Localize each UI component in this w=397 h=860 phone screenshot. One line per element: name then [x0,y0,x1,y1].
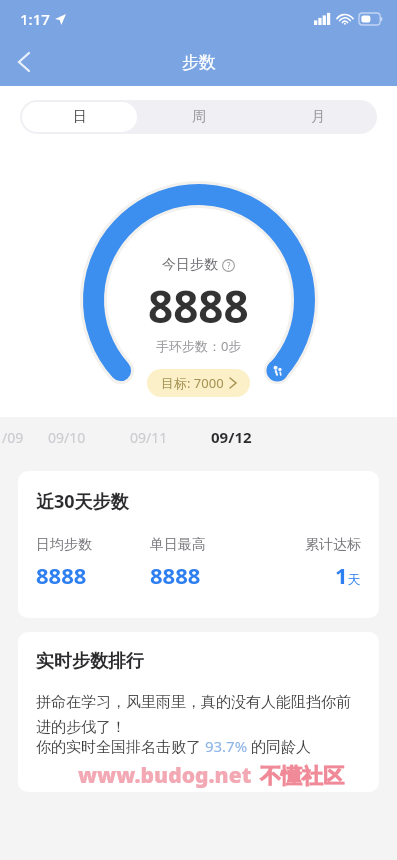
button[interactable]: 累计达标 [264,536,361,590]
staticText: 1天 [335,560,361,590]
staticText: 步数 [182,52,216,73]
button[interactable]: /09 [0,417,26,457]
staticText: ? [227,260,231,271]
button[interactable]: 目标: 7000 [147,369,250,397]
staticText: 手环步数：0步 [156,337,242,355]
button[interactable]: 月 [260,102,375,132]
staticText: 今日步数 [162,256,218,274]
staticText: 09/11 [130,428,168,447]
staticText: 实时步数排行 [36,650,144,673]
staticText: 目标: 7000 [161,374,224,392]
staticText: 拼命在学习，风里雨里，真的没有人能阻挡你前进的步伐了！ [36,693,361,736]
staticText: 单日最高 [150,536,206,554]
staticText: 8888 [148,276,249,336]
staticText: 累计达标 [305,536,361,554]
staticText: 你的实时全国排名击败了 93.7% 的同龄人 [36,736,312,756]
button[interactable]: 09/12 [190,417,272,457]
button[interactable]: Help [222,259,235,272]
staticText: 日 [73,108,87,126]
button[interactable]: 日均步数 [36,536,150,590]
staticText: www.budog.net [78,761,252,790]
staticText: 09/12 [211,427,252,447]
button[interactable]: 日 [22,102,137,132]
staticText: 1:17 [20,9,50,29]
staticText: 不懂社区 [260,763,344,789]
staticText: /09 [2,428,24,447]
staticText: 8888 [150,560,201,590]
button[interactable]: 单日最高 [150,536,264,590]
staticText: 09/10 [48,428,86,447]
button[interactable]: 09/11 [108,417,190,457]
staticText: 月 [311,108,325,126]
staticText: 周 [192,108,206,126]
button[interactable]: Back [0,38,48,86]
staticText: 8888 [36,560,87,590]
staticText: 日均步数 [36,536,92,554]
button[interactable]: 周 [141,102,256,132]
staticText: 近30天步数 [36,489,129,514]
button[interactable]: 09/10 [26,417,108,457]
